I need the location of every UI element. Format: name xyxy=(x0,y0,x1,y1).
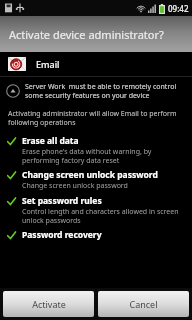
staticText: Email xyxy=(36,58,60,70)
staticText: Change screen unlock password xyxy=(22,181,128,191)
staticText: Server Work must be able to remotely con… xyxy=(25,82,184,100)
staticText: 09:42 xyxy=(168,3,189,14)
staticText: Password recovery xyxy=(22,229,102,241)
button[interactable]: Email xyxy=(0,52,192,76)
button[interactable]: Password recovery xyxy=(0,227,192,243)
staticText: Erase phone's data without warning, by p… xyxy=(22,147,183,165)
staticText: Activating administrator will allow Emai… xyxy=(8,109,182,127)
button[interactable]: Erase all data xyxy=(0,133,192,167)
staticText: Erase all data xyxy=(22,135,79,147)
staticText: Set password rules xyxy=(22,195,102,207)
button[interactable]: Change screen unlock password xyxy=(0,167,192,193)
button[interactable]: Set password rules xyxy=(0,193,192,227)
button[interactable]: Cancel xyxy=(98,291,189,317)
staticText: Control length and characters allowed in… xyxy=(22,207,183,225)
staticText: Change screen unlock password xyxy=(22,169,158,181)
button[interactable]: Collapse details xyxy=(0,77,192,103)
staticText: Cancel xyxy=(129,298,158,310)
staticText: Activate device administrator? xyxy=(9,27,188,42)
staticText: Activate xyxy=(32,298,66,310)
button[interactable]: Activate xyxy=(3,291,94,317)
